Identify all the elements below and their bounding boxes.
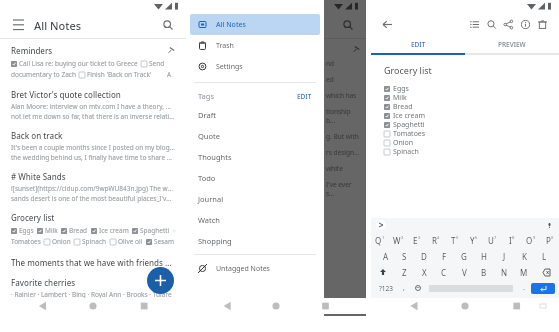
staticText: EDIT — [411, 40, 426, 49]
button[interactable]: M — [514, 264, 534, 280]
button[interactable]: Favorite cherries — [11, 277, 175, 298]
button[interactable]: H — [474, 248, 494, 264]
staticText: Z — [402, 267, 407, 278]
button[interactable]: Search — [160, 17, 176, 33]
button[interactable]: # White Sands — [11, 171, 175, 204]
button[interactable]: B — [474, 264, 494, 280]
button[interactable]: T — [445, 232, 464, 248]
staticText: V — [462, 267, 467, 278]
button[interactable]: , — [397, 280, 411, 296]
button[interactable]: Milk — [384, 93, 559, 102]
button[interactable]: Q — [371, 232, 389, 248]
button[interactable]: Share — [500, 16, 517, 33]
staticText: C — [441, 267, 447, 278]
staticText: Favorite cherries — [11, 277, 76, 288]
button[interactable]: Y — [464, 232, 483, 248]
button[interactable]: Voice input — [544, 220, 554, 230]
button[interactable]: Shift — [371, 264, 395, 280]
button[interactable]: Backspace — [534, 264, 559, 280]
staticText: Quote — [198, 131, 220, 141]
staticText: Journal — [198, 194, 224, 204]
button[interactable]: Settings — [190, 56, 320, 77]
button[interactable]: Create new note — [147, 267, 174, 294]
button[interactable]: Enter — [531, 283, 555, 294]
button[interactable]: K — [514, 248, 534, 264]
button[interactable]: V — [454, 264, 474, 280]
button[interactable]: Trash — [190, 35, 320, 56]
button[interactable]: G — [454, 248, 474, 264]
staticText: Call Lisa re: buying our ticket to Greec… — [19, 59, 138, 68]
button[interactable]: U — [483, 232, 502, 248]
staticText: ![sunset](https://cldup.com/9wpWU843n.jp… — [11, 184, 175, 193]
button[interactable]: Checklist — [466, 16, 483, 33]
button[interactable]: Info — [517, 16, 534, 33]
staticText: 8 — [512, 235, 515, 240]
staticText: 3 — [418, 235, 421, 240]
button[interactable]: Onion — [384, 138, 559, 147]
button[interactable]: Draft — [198, 104, 312, 125]
button[interactable]: ?123 — [375, 280, 397, 296]
button[interactable]: Delete — [534, 16, 551, 33]
staticText: EDIT — [297, 92, 312, 101]
button[interactable]: Grocery list — [11, 212, 175, 248]
button[interactable]: Journal — [198, 188, 312, 209]
button[interactable]: Eggs — [384, 84, 559, 93]
staticText: ed — [326, 75, 334, 84]
staticText: X — [422, 267, 427, 278]
button[interactable]: E — [407, 232, 426, 248]
button[interactable]: PREVIEW — [465, 36, 559, 53]
button[interactable]: F — [434, 248, 454, 264]
button[interactable]: C — [434, 264, 454, 280]
button[interactable]: Tomatoes — [384, 129, 559, 138]
button[interactable]: I — [502, 232, 521, 248]
staticText: white — [326, 164, 343, 173]
staticText: Onion — [52, 237, 71, 246]
button[interactable]: Expand toolbar — [376, 220, 386, 230]
button[interactable]: Spaghetti — [384, 120, 559, 129]
staticText: Spaghetti — [140, 226, 170, 235]
button[interactable]: L — [534, 248, 554, 264]
button[interactable]: W — [389, 232, 407, 248]
button[interactable]: Reminders — [11, 45, 175, 81]
button[interactable]: A — [376, 248, 395, 264]
staticText: · Rainier · Lambert · Bing · Royal Ann ·… — [11, 290, 172, 298]
staticText: Eggs — [19, 226, 34, 235]
button[interactable]: J — [494, 248, 514, 264]
button[interactable]: All Notes — [190, 14, 320, 35]
button[interactable]: P — [540, 232, 559, 248]
staticText: Y — [470, 235, 475, 246]
button[interactable]: Todo — [198, 167, 312, 188]
button[interactable]: N — [494, 264, 514, 280]
button[interactable]: Emoji — [411, 280, 425, 296]
button[interactable]: The moments that we have with friends an… — [11, 257, 175, 268]
button[interactable]: Shopping — [198, 230, 312, 251]
button[interactable]: O — [521, 232, 540, 248]
button[interactable]: EDIT — [371, 36, 465, 53]
button[interactable]: Watch — [198, 209, 312, 230]
button[interactable]: Search in note — [483, 16, 500, 33]
button[interactable]: D — [414, 248, 434, 264]
button[interactable]: Spinach — [384, 147, 559, 156]
button[interactable]: Z — [395, 264, 414, 280]
button[interactable]: Bread — [384, 102, 559, 111]
button[interactable]: Thoughts — [198, 146, 312, 167]
button[interactable]: Tags — [198, 88, 312, 104]
button[interactable]: R — [426, 232, 445, 248]
staticText: S — [402, 251, 407, 262]
staticText: Olive oil — [118, 237, 143, 246]
button[interactable]: S — [395, 248, 414, 264]
button[interactable]: X — [414, 264, 434, 280]
button[interactable]: Back on track — [11, 130, 175, 163]
button[interactable]: Ice cream — [384, 111, 559, 120]
button[interactable]: Open navigation drawer — [0, 12, 186, 38]
button[interactable]: Bret Victor's quote collection — [11, 89, 175, 122]
button[interactable]: Open navigation drawer — [10, 17, 26, 33]
button[interactable]: Untagged Notes — [190, 258, 320, 279]
staticText: sands desert is one of the most beautifu… — [11, 194, 175, 203]
button[interactable]: Back — [379, 16, 395, 32]
staticText: Thoughts — [198, 152, 232, 162]
button[interactable]: . — [517, 280, 531, 296]
staticText: The moments that we have with friends an… — [11, 257, 175, 268]
button[interactable]: Quote — [198, 125, 312, 146]
